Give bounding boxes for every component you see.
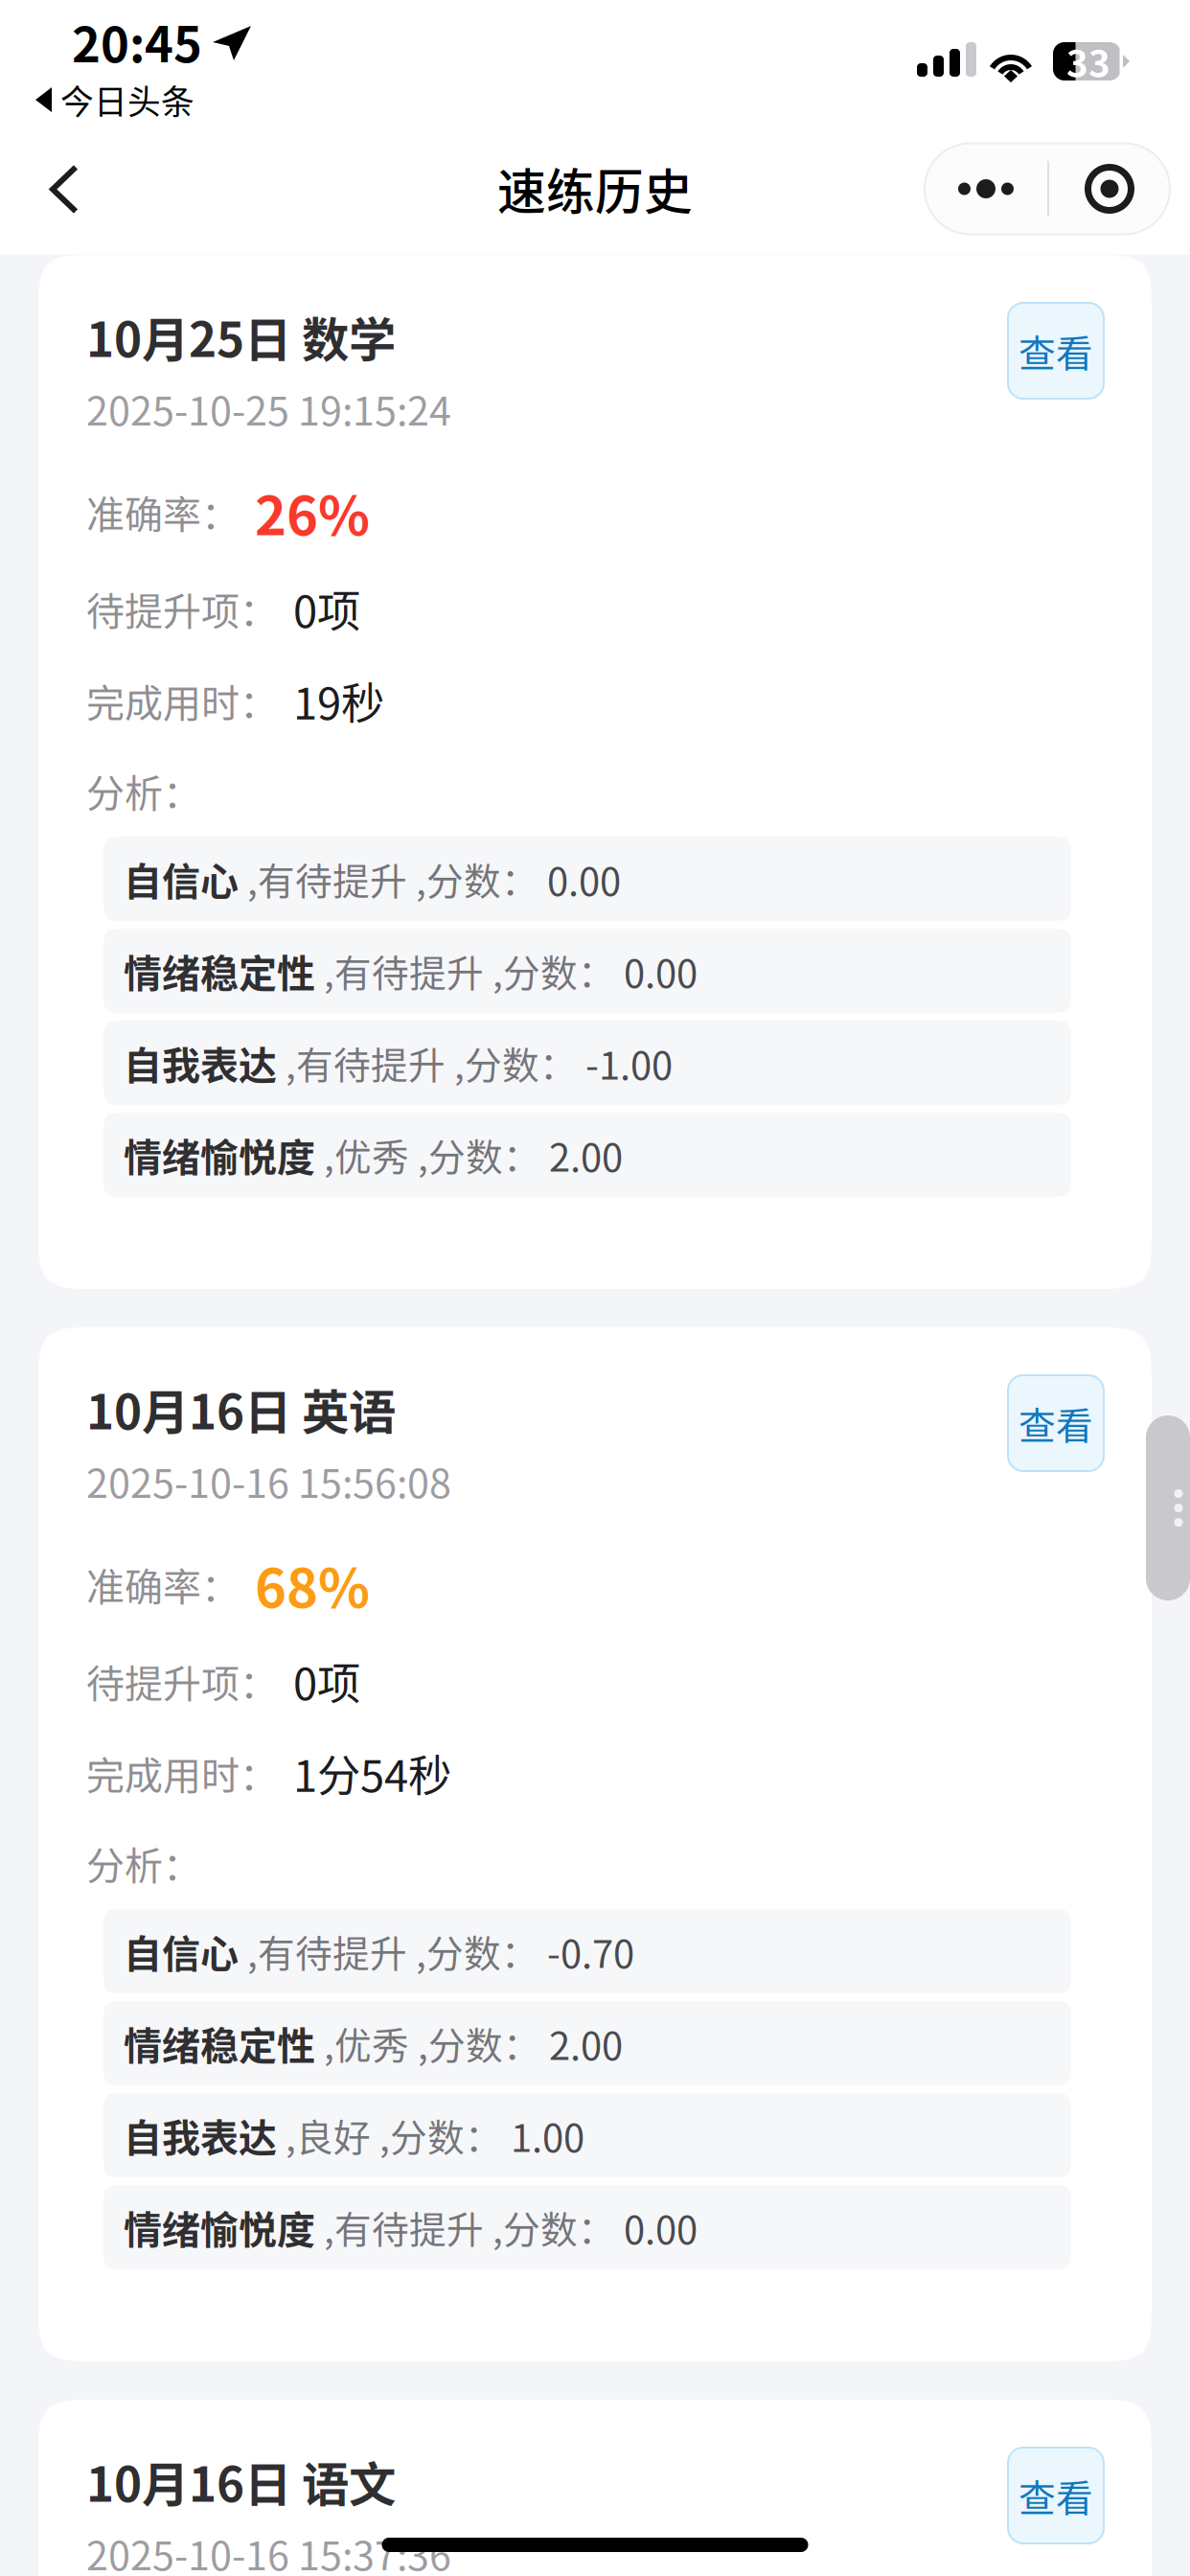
staticText: ,有待提升 ,分数：: [239, 852, 538, 906]
button[interactable]: 查看 10月16日 英语: [1008, 1375, 1104, 1471]
staticText: 0项: [293, 577, 360, 640]
staticText: 2025-10-16 15:56:08: [86, 1452, 451, 1509]
button[interactable]: Back: [0, 124, 126, 253]
staticText: 准确率：: [86, 1556, 240, 1612]
staticText: ,有待提升 ,分数：: [277, 1036, 577, 1090]
staticText: ,优秀 ,分数：: [315, 2016, 540, 2070]
staticText: -0.70: [538, 1923, 634, 1979]
staticText: -1.00: [577, 1035, 673, 1090]
staticText: 情绪稳定性: [124, 943, 315, 998]
staticText: 今日头条: [60, 76, 195, 124]
staticText: ,良好 ,分数：: [277, 2108, 502, 2162]
button[interactable]: More: [925, 143, 1047, 234]
staticText: 10月16日 语文: [86, 2447, 396, 2515]
staticText: 查看: [1018, 2469, 1093, 2522]
staticText: ,优秀 ,分数：: [315, 1128, 540, 1182]
staticText: 查看: [1018, 1396, 1093, 1450]
staticText: 10月16日 英语: [86, 1375, 396, 1443]
staticText: 情绪稳定性: [124, 2015, 315, 2071]
staticText: 查看: [1018, 324, 1093, 378]
staticText: 0.00: [615, 943, 698, 998]
staticText: 33: [1066, 34, 1110, 88]
staticText: 情绪愉悦度: [124, 1127, 315, 1182]
staticText: ,有待提升 ,分数：: [239, 1924, 538, 1978]
staticText: ,有待提升 ,分数：: [315, 944, 615, 998]
staticText: 2025-10-25 19:15:24: [86, 380, 451, 437]
staticText: 19秒: [293, 669, 384, 732]
staticText: 自信心: [124, 1923, 239, 1979]
staticText: 分析：: [86, 763, 201, 818]
staticText: 分析：: [86, 1835, 201, 1891]
staticText: 自我表达: [124, 1035, 277, 1090]
button[interactable]: 查看 10月16日 语文: [1008, 2448, 1104, 2543]
staticText: 2.00: [540, 1127, 623, 1182]
staticText: 26%: [255, 473, 370, 551]
staticText: 待提升项：: [86, 581, 278, 636]
staticText: 准确率：: [86, 484, 240, 539]
staticText: 68%: [255, 1545, 370, 1623]
staticText: 待提升项：: [86, 1653, 278, 1709]
staticText: 1分54秒: [293, 1741, 451, 1804]
button[interactable]: Close mini program: [1049, 143, 1170, 234]
staticText: 20:45: [72, 6, 202, 76]
staticText: 0.00: [538, 851, 621, 906]
staticText: 2.00: [540, 2015, 623, 2071]
staticText: 自我表达: [124, 2107, 277, 2163]
staticText: 情绪愉悦度: [124, 2199, 315, 2255]
staticText: 自信心: [124, 851, 239, 906]
button[interactable]: 查看 10月25日 数学: [1008, 303, 1104, 399]
staticText: 10月25日 数学: [86, 302, 396, 371]
staticText: ,有待提升 ,分数：: [315, 2200, 615, 2254]
staticText: 2025-10-16 15:37:36: [86, 2524, 451, 2576]
staticText: 1.00: [502, 2107, 584, 2163]
staticText: 0项: [293, 1649, 360, 1712]
staticText: 完成用时：: [86, 673, 278, 728]
staticText: 速练历史: [497, 154, 693, 224]
staticText: 完成用时：: [86, 1745, 278, 1801]
staticText: 0.00: [615, 2199, 698, 2255]
